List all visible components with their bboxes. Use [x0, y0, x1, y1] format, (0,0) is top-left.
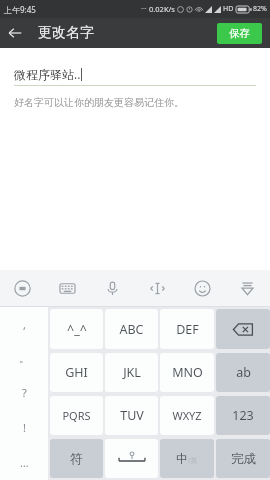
staticText: ! — [23, 420, 26, 435]
staticText: GHI — [65, 364, 88, 381]
staticText: 符 — [70, 451, 83, 467]
staticText: WXYZ — [172, 408, 202, 423]
staticText: 中 — [176, 451, 188, 466]
staticText: 82% — [253, 4, 267, 14]
button[interactable]: ! — [0, 410, 48, 445]
staticText: 。 — [19, 351, 30, 365]
staticText: 好名字可以让你的朋友更容易记住你。 — [14, 96, 184, 109]
staticText: … — [20, 455, 29, 470]
button[interactable]: Input method — [0, 270, 45, 306]
staticText: 完成 — [231, 451, 256, 467]
staticText: /英 — [188, 456, 198, 466]
button[interactable]: Space — [105, 439, 158, 478]
button[interactable]: 123 — [216, 396, 270, 435]
button[interactable]: ^_^ — [50, 309, 103, 349]
staticText: 更改名字 — [38, 24, 94, 42]
button[interactable]: Hide keyboard — [225, 270, 270, 306]
staticText: 微程序驿站.. — [14, 66, 81, 82]
button[interactable]: 保存 — [217, 23, 262, 44]
button[interactable]: ABC — [105, 309, 158, 349]
button[interactable]: Keyboard layout — [45, 270, 90, 306]
button[interactable]: Cursor control — [135, 270, 180, 306]
staticText: 上午9:45 — [4, 4, 36, 15]
staticText: ? — [22, 385, 27, 400]
button[interactable]: Voice input — [90, 270, 135, 306]
staticText: 0.02K/s — [149, 4, 175, 14]
staticText: , — [23, 317, 26, 332]
button[interactable]: TUV — [105, 396, 158, 435]
button[interactable]: ab — [216, 353, 270, 392]
staticText: ABC — [119, 321, 144, 338]
staticText: ab — [236, 364, 251, 381]
button[interactable]: … — [0, 445, 48, 480]
button[interactable]: 。 — [0, 341, 48, 375]
staticText: ^_^ — [67, 321, 87, 338]
button[interactable]: 中 — [160, 439, 214, 478]
staticText: DEF — [176, 321, 199, 338]
button[interactable]: 完成 — [216, 439, 270, 478]
button[interactable]: MNO — [160, 353, 214, 392]
button[interactable]: WXYZ — [160, 396, 214, 435]
staticText: 123 — [232, 407, 254, 424]
staticText: TUV — [120, 407, 144, 424]
button[interactable]: 符 — [50, 439, 103, 478]
staticText: JKL — [123, 364, 141, 381]
button[interactable]: Delete — [216, 309, 270, 349]
button[interactable]: Back — [0, 18, 30, 48]
staticText: PQRS — [62, 408, 91, 423]
button[interactable]: , — [0, 307, 48, 341]
button[interactable]: JKL — [105, 353, 158, 392]
staticText: HD — [223, 4, 234, 14]
button[interactable]: GHI — [50, 353, 103, 392]
staticText: 保存 — [229, 27, 250, 40]
button[interactable]: ? — [0, 375, 48, 410]
button[interactable]: DEF — [160, 309, 214, 349]
staticText: MNO — [172, 364, 203, 381]
button[interactable]: PQRS — [50, 396, 103, 435]
button[interactable]: Emoji — [180, 270, 225, 306]
staticText: ··· — [141, 4, 147, 14]
